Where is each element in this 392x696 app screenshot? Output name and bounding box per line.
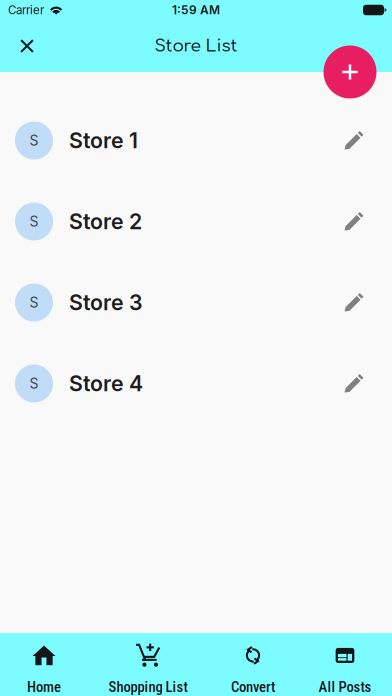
staticText: Store 3: [69, 290, 143, 315]
button[interactable]: Close: [5, 24, 49, 68]
staticText: S: [29, 375, 38, 392]
button[interactable]: Shopping List: [88, 633, 208, 696]
button[interactable]: Convert: [208, 633, 298, 696]
button[interactable]: Home: [0, 633, 88, 696]
staticText: Store 2: [69, 209, 142, 234]
button[interactable]: Add store: [323, 45, 376, 98]
staticText: Home: [27, 678, 61, 696]
staticText: Shopping List: [108, 678, 187, 696]
staticText: Store List: [154, 37, 237, 55]
staticText: S: [29, 132, 38, 149]
button[interactable]: S: [0, 100, 392, 181]
button[interactable]: All Posts: [298, 633, 392, 696]
button[interactable]: S: [0, 181, 392, 262]
staticText: All Posts: [318, 678, 371, 696]
staticText: Carrier: [8, 3, 44, 17]
button[interactable]: S: [0, 343, 392, 424]
staticText: Store 1: [69, 128, 138, 153]
staticText: 1:59 AM: [172, 3, 220, 17]
staticText: Store 4: [69, 371, 143, 396]
staticText: S: [29, 213, 38, 230]
button[interactable]: S: [0, 262, 392, 343]
staticText: S: [29, 294, 38, 311]
staticText: Convert: [231, 678, 275, 696]
